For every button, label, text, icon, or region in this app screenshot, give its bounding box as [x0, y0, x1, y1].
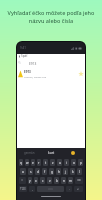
button[interactable]: Hladat — [17, 58, 85, 67]
staticText: h — [58, 170, 60, 174]
staticText: Späť — [21, 54, 28, 58]
button[interactable]: Backspace — [75, 177, 83, 184]
button[interactable]: a — [20, 168, 26, 175]
staticText: ?123 — [20, 187, 26, 191]
button[interactable]: Spat — [17, 54, 85, 58]
staticText: t — [45, 161, 47, 165]
button[interactable]: t — [43, 159, 48, 166]
button[interactable]: kurt — [40, 151, 62, 155]
staticText: Vyhľadať éčko môžete podľa jeho názvu al… — [0, 9, 102, 25]
button[interactable]: w — [25, 159, 29, 166]
button[interactable]: germán — [18, 151, 40, 155]
staticText: m — [69, 179, 72, 183]
staticText: p — [80, 161, 82, 165]
staticText: f — [44, 170, 46, 174]
button[interactable]: Symbols — [19, 186, 27, 192]
button[interactable]: p — [78, 159, 83, 166]
staticText: E913 — [29, 62, 37, 66]
button[interactable]: b — [54, 177, 59, 184]
staticText: k — [72, 170, 74, 174]
button[interactable]: f — [42, 168, 47, 175]
staticText: kurt — [48, 151, 55, 155]
staticText: j — [65, 170, 66, 174]
button[interactable]: y — [28, 177, 32, 184]
button[interactable]: k — [70, 168, 75, 175]
staticText: s — [30, 170, 32, 174]
staticText: g — [51, 170, 53, 174]
staticText: v — [49, 179, 51, 183]
button[interactable]: e — [31, 159, 35, 166]
staticText: 9:41 — [20, 46, 26, 50]
button[interactable]: Emoji — [62, 151, 84, 155]
button[interactable]: m — [68, 177, 73, 184]
staticText: d — [37, 170, 39, 174]
staticText: c — [42, 179, 44, 183]
button[interactable]: v — [47, 177, 52, 184]
button[interactable]: o — [71, 159, 76, 166]
button[interactable]: l — [77, 168, 82, 175]
button[interactable]: j — [63, 168, 68, 175]
staticText: germán — [24, 151, 35, 155]
staticText: o — [73, 161, 75, 165]
button[interactable]: g — [49, 168, 54, 175]
staticText: i — [66, 161, 67, 165]
button[interactable]: s — [28, 168, 33, 175]
other: Hladat — [18, 61, 21, 64]
button[interactable]: Medzerník — [37, 186, 64, 192]
staticText: . — [69, 187, 70, 191]
button[interactable]: x — [34, 177, 38, 184]
staticText: E913 — [24, 70, 31, 74]
button[interactable]: z — [50, 159, 55, 166]
staticText: a — [22, 170, 24, 174]
other: Spat — [18, 55, 21, 58]
staticText: ⌫ — [77, 179, 81, 182]
staticText: n — [63, 179, 65, 183]
staticText: y — [29, 179, 31, 183]
button[interactable]: n — [61, 177, 66, 184]
button[interactable]: E913 — [17, 67, 85, 80]
button[interactable]: c — [40, 177, 45, 184]
staticText: x — [35, 179, 37, 183]
staticText: Lanolín, vlnený tuk — [24, 75, 47, 78]
button[interactable]: d — [35, 168, 40, 175]
staticText: b — [56, 179, 58, 183]
button[interactable]: i — [64, 159, 69, 166]
button[interactable]: Period — [66, 186, 72, 192]
button[interactable]: Enter — [74, 186, 83, 192]
button[interactable]: r — [37, 159, 41, 166]
staticText: r — [38, 161, 40, 165]
button[interactable]: h — [56, 168, 61, 175]
staticText: u — [59, 161, 61, 165]
button[interactable]: u — [57, 159, 62, 166]
staticText: z — [52, 161, 54, 165]
button[interactable]: Comma — [29, 186, 35, 192]
other: Emoji — [71, 151, 75, 155]
staticText: e — [32, 161, 34, 165]
staticText: w — [26, 161, 29, 165]
other: Oblubene — [78, 71, 84, 77]
staticText: ↵ — [77, 188, 80, 191]
staticText: l — [79, 170, 80, 174]
staticText: ⇧ — [21, 179, 24, 182]
button[interactable]: Shift — [19, 177, 26, 184]
staticText: , — [32, 187, 33, 191]
button[interactable]: q — [19, 159, 23, 166]
staticText: q — [20, 161, 22, 165]
